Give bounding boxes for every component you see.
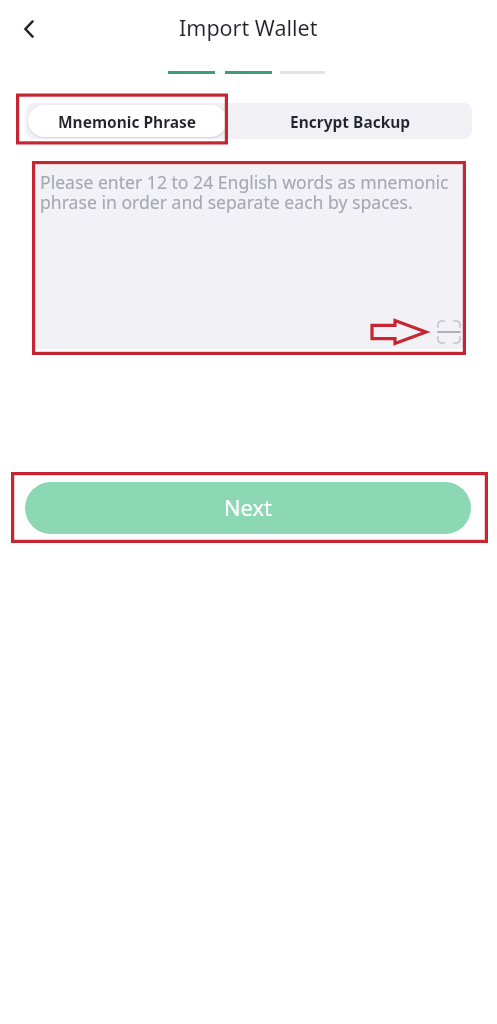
button[interactable]: Back [7, 7, 51, 51]
button[interactable]: Please enter 12 to 24 English words as m… [32, 165, 465, 349]
staticText: Next [224, 493, 272, 523]
button[interactable]: Mnemonic Phrase [28, 105, 227, 137]
staticText: Encrypt Backup [290, 111, 411, 132]
button[interactable]: Scan QR code [433, 316, 465, 348]
staticText: Import Wallet [179, 13, 318, 42]
button[interactable]: Encrypt Backup [229, 103, 472, 139]
staticText: Please enter 12 to 24 English words as m… [40, 170, 457, 214]
staticText: Mnemonic Phrase [58, 111, 197, 132]
button[interactable]: Next [25, 482, 471, 534]
